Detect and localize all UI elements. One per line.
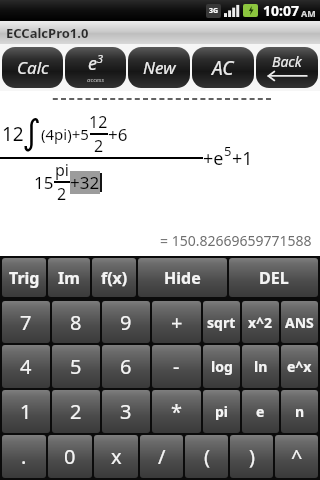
staticText: 2: [57, 183, 67, 205]
staticText: +: [171, 309, 183, 336]
staticText: x: [111, 443, 122, 470]
staticText: ^: [291, 443, 303, 470]
staticText: Calc: [17, 56, 49, 79]
button[interactable]: 6: [102, 345, 150, 388]
staticText: ): [249, 443, 255, 470]
button[interactable]: 5: [52, 345, 100, 388]
button[interactable]: log: [203, 345, 240, 388]
staticText: 1: [20, 398, 32, 425]
button[interactable]: e^x: [281, 345, 318, 388]
staticText: +1: [232, 146, 253, 171]
button[interactable]: 7: [2, 301, 50, 343]
staticText: 10:07: [263, 1, 299, 20]
button[interactable]: 0: [48, 435, 92, 478]
staticText: 5: [70, 353, 82, 380]
staticText: New: [143, 56, 176, 79]
staticText: (: [204, 443, 210, 470]
button[interactable]: Calc: [2, 47, 63, 88]
staticText: -: [173, 353, 180, 380]
staticText: ln: [254, 357, 268, 376]
staticText: .: [21, 443, 27, 470]
staticText: (4pi)+5: [41, 124, 89, 144]
staticText: n: [295, 402, 305, 421]
staticText: 5: [224, 142, 232, 160]
staticText: Back: [272, 52, 302, 71]
staticText: 2: [70, 398, 82, 425]
staticText: 9: [120, 309, 132, 336]
button[interactable]: 8: [52, 301, 100, 343]
staticText: 15: [34, 171, 54, 194]
button[interactable]: /: [140, 435, 183, 478]
staticText: 12: [89, 111, 108, 133]
button[interactable]: Im: [48, 258, 90, 297]
button[interactable]: ^: [275, 435, 318, 478]
staticText: 0: [64, 443, 76, 470]
button[interactable]: AC: [192, 47, 254, 88]
staticText: 4: [20, 353, 32, 380]
button[interactable]: New: [128, 47, 190, 88]
staticText: Hide: [164, 267, 201, 289]
staticText: /: [158, 443, 166, 470]
staticText: 6: [120, 353, 132, 380]
staticText: 3: [97, 51, 104, 66]
staticText: +32: [70, 171, 100, 194]
staticText: ECCalcPro1.0: [6, 24, 89, 42]
button[interactable]: .: [2, 435, 46, 478]
staticText: e^x: [287, 357, 312, 376]
button[interactable]: e: [242, 390, 279, 433]
staticText: +6: [108, 123, 128, 146]
button[interactable]: -: [152, 345, 201, 388]
button[interactable]: ): [230, 435, 273, 478]
staticText: 12: [2, 121, 24, 147]
button[interactable]: 4: [2, 345, 50, 388]
staticText: Trig: [9, 267, 40, 289]
staticText: *: [171, 398, 183, 425]
staticText: pi: [55, 159, 69, 181]
button[interactable]: x: [94, 435, 138, 478]
staticText: AC: [212, 55, 234, 81]
button[interactable]: Hide: [138, 258, 227, 297]
staticText: e: [256, 402, 265, 421]
staticText: AM: [301, 7, 316, 19]
button[interactable]: pi: [203, 390, 240, 433]
button[interactable]: (: [185, 435, 228, 478]
button[interactable]: Trig: [2, 258, 46, 297]
button[interactable]: *: [152, 390, 201, 433]
staticText: DEL: [259, 267, 289, 289]
button[interactable]: ANS: [281, 301, 318, 343]
button[interactable]: n: [281, 390, 318, 433]
staticText: log: [211, 357, 233, 376]
button[interactable]: DEL: [229, 258, 318, 297]
button[interactable]: e cubed access: [65, 47, 126, 88]
button[interactable]: 3: [102, 390, 150, 433]
staticText: 7: [20, 309, 32, 336]
staticText: +e: [203, 146, 224, 171]
staticText: Im: [58, 267, 80, 289]
staticText: 2: [94, 135, 104, 157]
button[interactable]: f(x): [92, 258, 136, 297]
staticText: access: [87, 76, 105, 84]
staticText: 3G: [209, 6, 219, 16]
staticText: 8: [70, 309, 82, 336]
staticText: x^2: [248, 313, 273, 332]
staticText: 3: [120, 398, 132, 425]
button[interactable]: ln: [242, 345, 279, 388]
staticText: pi: [215, 402, 229, 421]
staticText: sqrt: [207, 313, 236, 332]
button[interactable]: 2: [52, 390, 100, 433]
staticText: ANS: [285, 313, 314, 332]
staticText: = 150.82669659771588: [160, 231, 312, 250]
button[interactable]: x^2: [242, 301, 279, 343]
staticText: e: [88, 51, 97, 76]
button[interactable]: 1: [2, 390, 50, 433]
button[interactable]: 9: [102, 301, 150, 343]
button[interactable]: +: [152, 301, 201, 343]
button[interactable]: Back: [256, 47, 318, 88]
button[interactable]: sqrt: [203, 301, 240, 343]
staticText: f(x): [101, 267, 128, 289]
